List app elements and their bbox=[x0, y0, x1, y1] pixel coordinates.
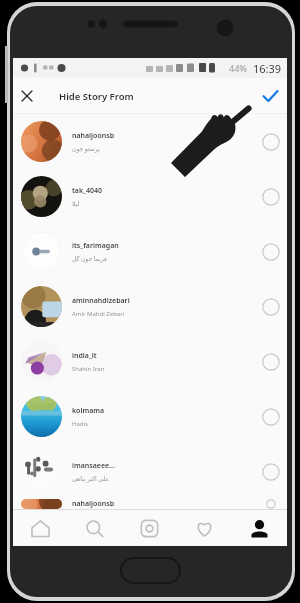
button[interactable]: Done bbox=[254, 78, 287, 114]
staticText: Hide Story From bbox=[59, 90, 134, 103]
button[interactable]: its_farimagan bbox=[13, 224, 287, 279]
staticText: فریما جون گل bbox=[72, 255, 107, 263]
staticText: its_farimagan bbox=[72, 241, 119, 251]
staticText: Shahin Iran bbox=[72, 365, 105, 373]
button[interactable]: Profile bbox=[232, 510, 287, 546]
button[interactable]: nahaljoonsb bbox=[13, 499, 287, 509]
button[interactable]: Activity bbox=[177, 510, 232, 546]
button[interactable]: Add post bbox=[122, 510, 177, 546]
button[interactable]: kolmama bbox=[13, 389, 287, 444]
staticText: tak_4040 bbox=[72, 186, 103, 196]
staticText: Hadis bbox=[72, 420, 88, 428]
staticText: kolmama bbox=[72, 406, 105, 416]
button[interactable]: india_it bbox=[13, 334, 287, 389]
button[interactable]: Search bbox=[67, 510, 122, 546]
staticText: nahaljoonsb bbox=[72, 131, 115, 141]
staticText: 16:39 bbox=[253, 61, 282, 76]
staticText: imansaeee... bbox=[72, 461, 115, 471]
staticText: علی اکبر پناهی bbox=[72, 475, 109, 483]
staticText: پرستو جون bbox=[72, 145, 100, 153]
button[interactable]: imansaeee... bbox=[13, 444, 287, 499]
button[interactable]: tak_4040 bbox=[13, 169, 287, 224]
button[interactable]: nahaljoonsb bbox=[13, 114, 287, 169]
staticText: nahaljoonsb bbox=[72, 499, 115, 509]
button[interactable]: aminnahdizebari bbox=[13, 279, 287, 334]
staticText: aminnahdizebari bbox=[72, 296, 130, 306]
button[interactable]: Home bbox=[13, 510, 67, 546]
button[interactable]: Close bbox=[13, 78, 40, 114]
staticText: india_it bbox=[72, 351, 97, 361]
staticText: 44% bbox=[229, 62, 247, 74]
staticText: لیلا bbox=[72, 200, 80, 207]
staticText: Amir Mahdi Zebari bbox=[72, 310, 125, 318]
